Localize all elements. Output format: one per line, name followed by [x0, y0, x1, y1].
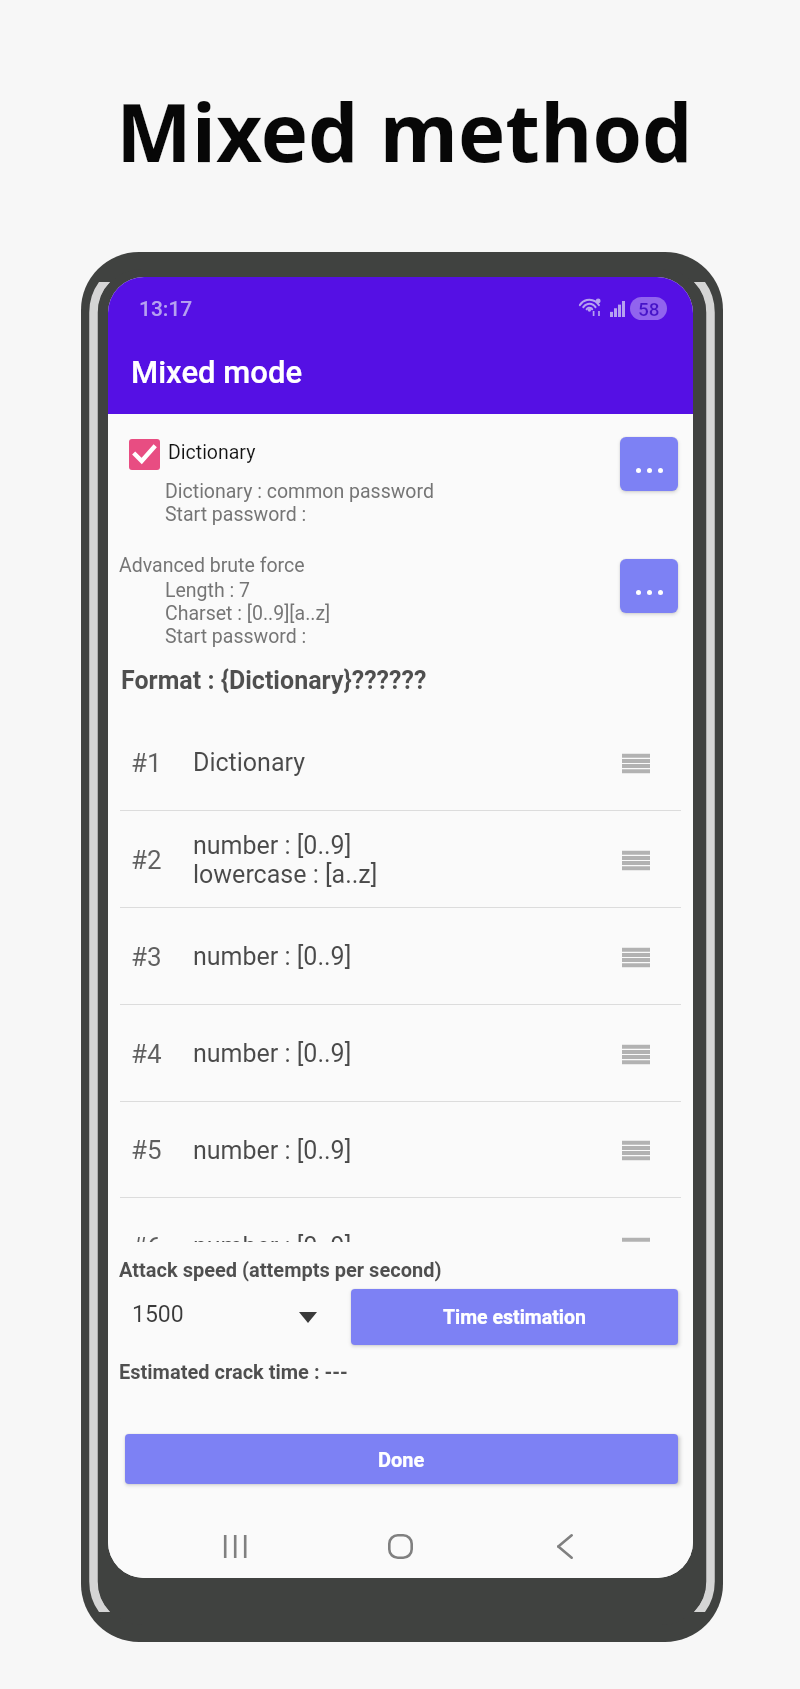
button[interactable]: #2	[108, 811, 693, 908]
staticText: number : [0..9]	[193, 1232, 352, 1261]
button[interactable]: #3	[108, 908, 693, 1005]
button[interactable]: #1	[108, 714, 693, 811]
button[interactable]: #6	[108, 1198, 693, 1295]
staticText: number : [0..9]	[193, 831, 352, 860]
staticText: Dictionary	[168, 441, 256, 464]
staticText: Format : {Dictionary}??????	[121, 666, 427, 695]
staticText: 1500	[132, 1301, 184, 1328]
staticText: number : [0..9]	[193, 1136, 352, 1165]
staticText: number : [0..9]	[193, 942, 352, 971]
staticText: Start password :	[165, 625, 307, 648]
button[interactable]: More options	[620, 437, 678, 491]
button[interactable]: Recents	[205, 1516, 265, 1576]
button[interactable]: Home	[370, 1516, 430, 1576]
button[interactable]: Reorder	[614, 935, 658, 979]
staticText: Done	[378, 1448, 425, 1471]
staticText: #2	[131, 845, 162, 875]
button[interactable]: Done	[125, 1434, 678, 1484]
staticText: #4	[131, 1039, 162, 1069]
staticText: 13:17	[139, 297, 193, 322]
staticText: Advanced brute force	[119, 554, 305, 577]
button[interactable]: Time estimation	[351, 1289, 678, 1345]
staticText: Start password :	[165, 503, 307, 526]
staticText: 58	[638, 298, 660, 320]
staticText: Mixed mode	[131, 354, 303, 390]
staticText: Charset : [0..9][a..z]	[165, 602, 331, 625]
staticText: Dictionary	[193, 748, 306, 777]
staticText: Estimated crack time : ---	[119, 1360, 348, 1383]
button[interactable]: Reorder	[614, 1225, 658, 1269]
staticText: Time estimation	[443, 1306, 586, 1329]
button[interactable]: Dictionary checkbox	[129, 439, 160, 470]
staticText: Attack speed (attempts per second)	[119, 1258, 442, 1281]
staticText: number : [0..9]	[193, 1039, 352, 1068]
staticText: #3	[131, 942, 162, 972]
button[interactable]: #4	[108, 1005, 693, 1102]
staticText: #5	[131, 1135, 162, 1165]
staticText: lowercase : [a..z]	[193, 860, 378, 889]
button[interactable]: Reorder	[614, 838, 658, 882]
button[interactable]: Reorder	[614, 741, 658, 785]
staticText: Dictionary : common password	[165, 480, 434, 503]
button[interactable]: Reorder	[614, 1032, 658, 1076]
staticText: Mixed method	[116, 76, 693, 185]
staticText: #1	[131, 748, 162, 778]
button[interactable]: #5	[108, 1102, 693, 1198]
button[interactable]: Back	[535, 1516, 595, 1576]
staticText: Length : 7	[165, 579, 251, 602]
button[interactable]: Reorder	[614, 1128, 658, 1172]
staticText: #6	[131, 1232, 162, 1262]
button[interactable]: More options	[620, 559, 678, 613]
